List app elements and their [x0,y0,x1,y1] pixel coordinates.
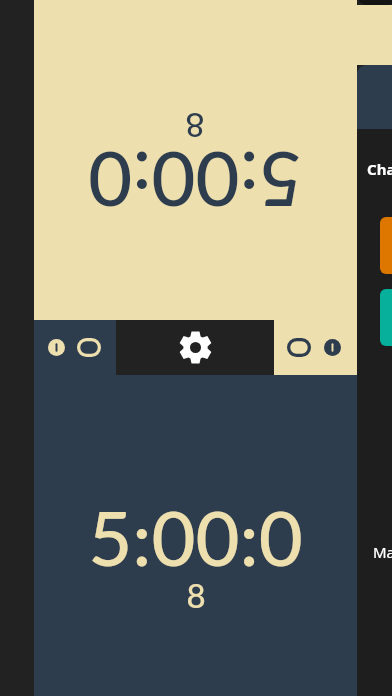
button[interactable] [34,375,357,696]
staticText: 5:00:0 [88,136,303,227]
button[interactable] [380,289,392,346]
staticText: Change time [367,159,392,179]
staticText: 8 [186,575,206,615]
staticText: Manage presets [373,542,392,562]
button[interactable]: Settings [116,320,274,375]
button[interactable]: Pause [320,320,344,375]
staticText: 5:00:0 [88,491,303,582]
button[interactable]: Pause [44,320,68,375]
button[interactable]: Reset [77,320,101,375]
button[interactable] [380,217,392,274]
button[interactable] [34,0,357,320]
staticText: 8 [185,106,205,146]
button[interactable]: Reset [287,320,311,375]
